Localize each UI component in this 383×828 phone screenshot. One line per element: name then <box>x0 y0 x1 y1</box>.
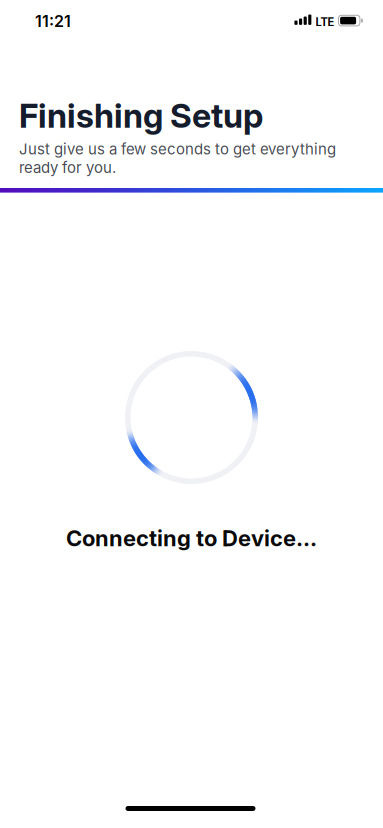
staticText: Connecting to Device... <box>66 525 317 552</box>
staticText: Finishing Setup <box>19 95 263 136</box>
staticText: LTE <box>315 15 334 29</box>
staticText: 11:21 <box>35 11 71 31</box>
staticText: Just give us a few seconds to get everyt… <box>19 140 336 177</box>
